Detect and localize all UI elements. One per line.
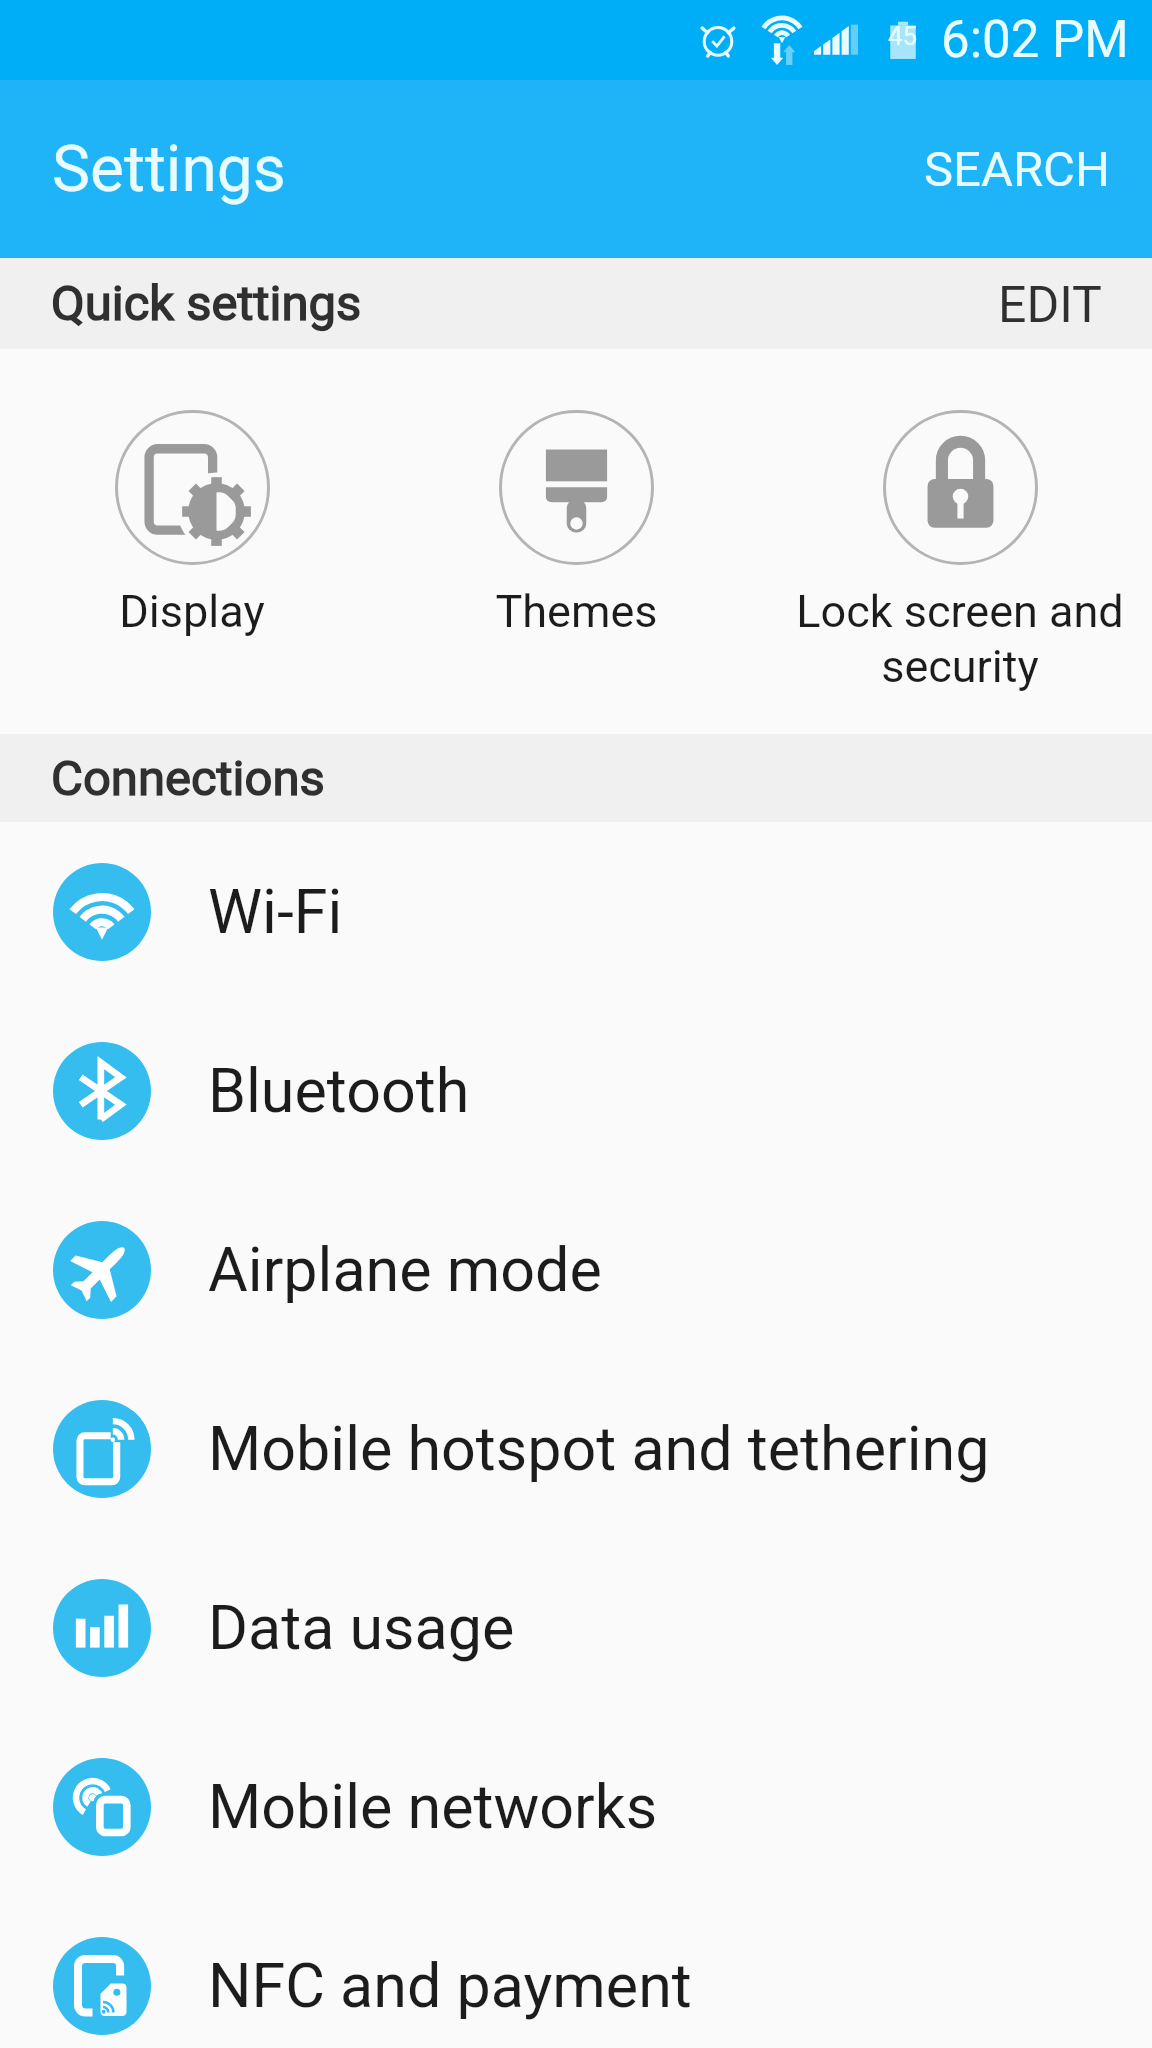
- staticText: Connections: [51, 750, 325, 807]
- staticText: 6:02 PM: [941, 10, 1129, 70]
- staticText: Themes: [495, 585, 658, 638]
- button[interactable]: Display: [0, 349, 384, 638]
- staticText: Wi-Fi: [208, 876, 343, 947]
- staticText: SEARCH: [924, 141, 1110, 198]
- button[interactable]: Data usage: [0, 1538, 1152, 1717]
- button[interactable]: Lock screen and security: [768, 349, 1152, 693]
- button[interactable]: Mobile networks: [0, 1717, 1152, 1896]
- staticText: Data usage: [208, 1592, 515, 1663]
- button[interactable]: Bluetooth: [0, 1001, 1152, 1180]
- staticText: Display: [119, 585, 265, 638]
- staticText: 45: [888, 21, 918, 51]
- button[interactable]: SEARCH: [882, 105, 1152, 234]
- button[interactable]: Mobile hotspot and tethering: [0, 1359, 1152, 1538]
- staticText: Bluetooth: [208, 1055, 470, 1126]
- button[interactable]: Wi-Fi: [0, 822, 1152, 1001]
- staticText: Airplane mode: [208, 1234, 602, 1305]
- staticText: Lock screen and security: [796, 585, 1124, 693]
- staticText: Mobile networks: [208, 1771, 658, 1842]
- button[interactable]: Themes: [384, 349, 768, 638]
- button[interactable]: NFC and payment: [0, 1896, 1152, 2048]
- staticText: EDIT: [998, 276, 1102, 331]
- staticText: Settings: [52, 132, 286, 207]
- staticText: Mobile hotspot and tethering: [208, 1413, 990, 1484]
- staticText: Quick settings: [51, 275, 362, 332]
- staticText: NFC and payment: [208, 1950, 692, 2021]
- button[interactable]: EDIT: [948, 258, 1152, 349]
- button[interactable]: Airplane mode: [0, 1180, 1152, 1359]
